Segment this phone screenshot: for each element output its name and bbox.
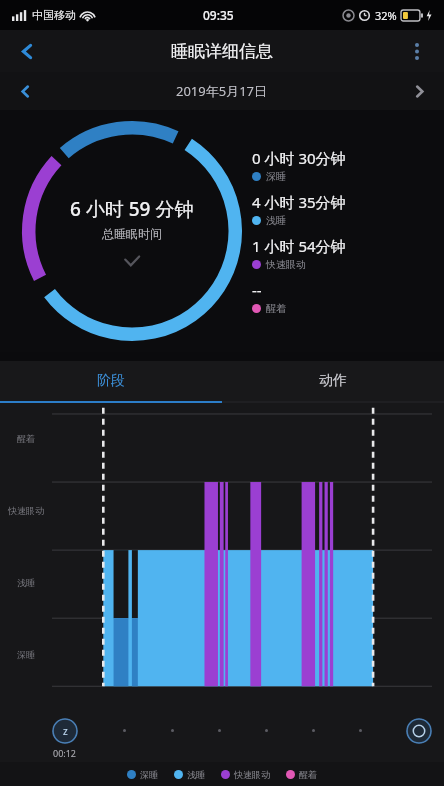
- staticText: 醒着: [17, 433, 35, 444]
- staticText: 深睡: [140, 769, 158, 780]
- staticText: 浅睡: [187, 769, 205, 780]
- staticText: 快速眼动: [266, 258, 306, 271]
- staticText: 动作: [319, 372, 347, 390]
- staticText: 1 小时 54分钟: [252, 236, 346, 256]
- staticText: 2019年5月17日: [176, 82, 268, 100]
- staticText: 深睡: [266, 170, 286, 183]
- staticText: 深睡: [17, 649, 35, 660]
- staticText: 睡眠详细信息: [171, 41, 273, 62]
- staticText: 快速眼动: [8, 505, 44, 516]
- button[interactable]: 动作: [222, 361, 444, 401]
- button[interactable]: 入睡时间: [52, 718, 78, 744]
- staticText: 32%: [375, 8, 397, 23]
- button[interactable]: 阶段: [0, 361, 222, 401]
- button[interactable]: 更多选项: [396, 30, 438, 72]
- staticText: 阶段: [97, 372, 125, 390]
- button[interactable]: 醒着: [286, 769, 317, 780]
- staticText: 总睡眠时间: [102, 226, 162, 241]
- staticText: 浅睡: [17, 577, 35, 588]
- staticText: z: [63, 724, 68, 738]
- staticText: 0 小时 30分钟: [252, 148, 346, 168]
- staticText: 醒着: [266, 302, 286, 315]
- button[interactable]: 快速眼动: [221, 769, 270, 780]
- staticText: 09:35: [203, 7, 234, 23]
- button[interactable]: 后一天: [400, 72, 438, 110]
- button[interactable]: 前一天: [6, 72, 44, 110]
- staticText: 中国移动: [32, 8, 76, 22]
- staticText: 4 小时 35分钟: [252, 192, 346, 212]
- staticText: 00:12: [53, 747, 77, 759]
- staticText: 醒着: [299, 769, 317, 780]
- staticText: 6 小时 59 分钟: [70, 196, 194, 222]
- button[interactable]: 起床时间: [406, 718, 432, 744]
- staticText: 浅睡: [266, 214, 286, 227]
- staticText: --: [252, 280, 262, 300]
- button[interactable]: 返回: [6, 30, 48, 72]
- button[interactable]: 浅睡: [174, 769, 205, 780]
- staticText: 快速眼动: [234, 769, 270, 780]
- button[interactable]: 深睡: [127, 769, 158, 780]
